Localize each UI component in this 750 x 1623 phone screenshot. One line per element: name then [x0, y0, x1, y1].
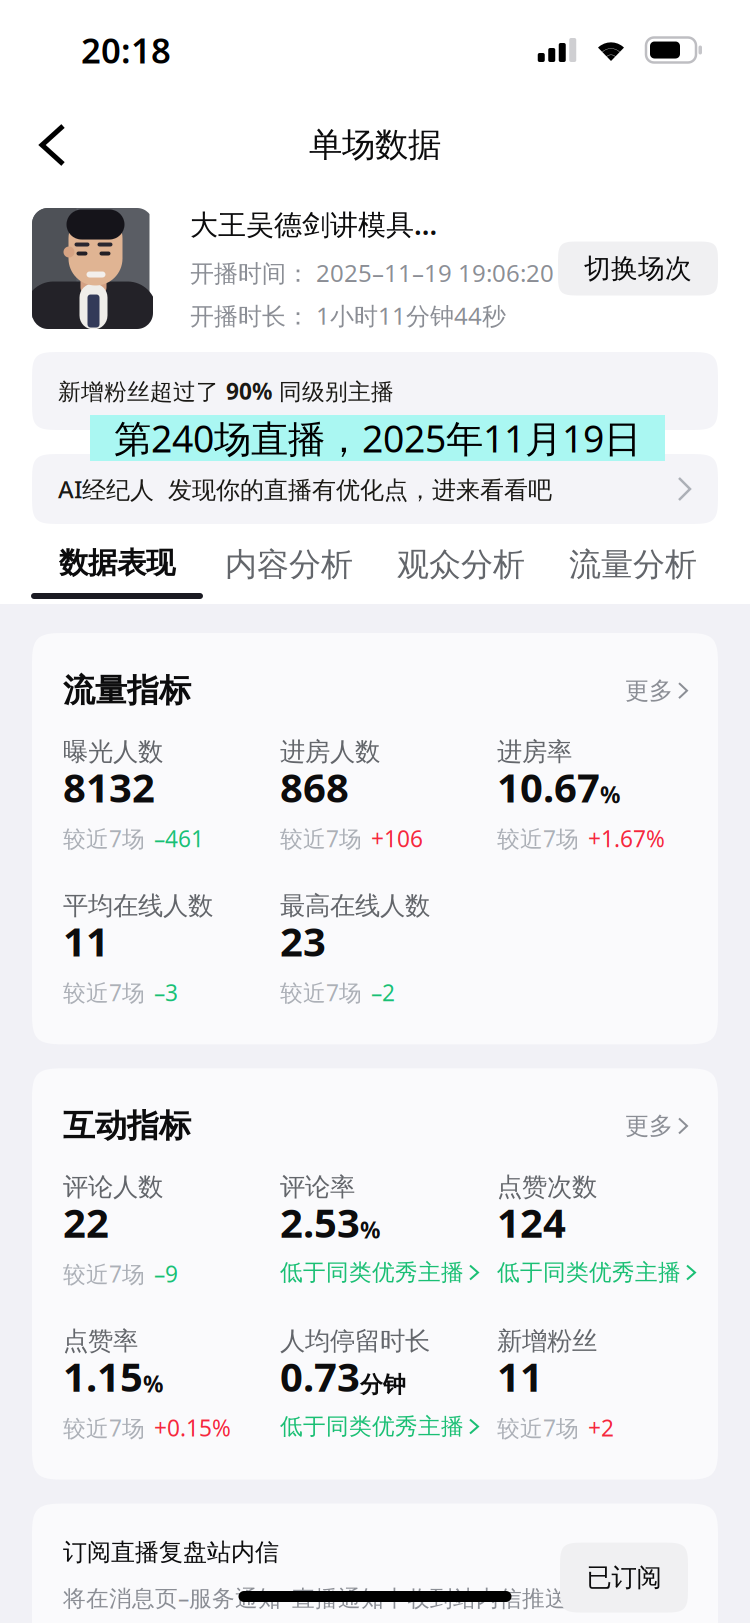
staticText: 更多	[625, 1111, 673, 1141]
staticText: 将在消息页–服务通知–直播通知中收到站内信推送	[63, 1583, 568, 1613]
staticText: 分钟	[360, 1371, 406, 1399]
staticText: 较近7场	[63, 1259, 145, 1289]
staticText: 已订阅	[586, 1562, 661, 1593]
staticText: 平均在线人数	[63, 890, 213, 921]
staticText: 较近7场	[280, 823, 362, 853]
staticText: 较近7场	[63, 823, 145, 853]
staticText: 低于同类优秀主播	[280, 1259, 464, 1286]
staticText: 较近7场	[63, 1413, 145, 1443]
staticText: 互动指标	[63, 1106, 191, 1146]
staticText: 20:18	[81, 27, 171, 73]
button[interactable]: 数据表现	[31, 524, 203, 604]
staticText: 124	[497, 1196, 566, 1249]
staticText: –9	[154, 1259, 178, 1289]
button[interactable]: 观众分析	[375, 524, 547, 604]
staticText: 23	[280, 914, 326, 967]
staticText: 人均停留时长	[280, 1326, 430, 1357]
button[interactable]: 流量分析	[547, 524, 719, 604]
staticText: –3	[154, 977, 178, 1007]
staticText: 单场数据	[309, 124, 441, 165]
staticText: 内容分析	[225, 545, 353, 584]
staticText: +0.15%	[154, 1413, 231, 1443]
staticText: 进房人数	[280, 736, 380, 767]
staticText: 最高在线人数	[280, 890, 430, 921]
staticText: 11	[63, 914, 109, 967]
staticText: 切换场次	[584, 252, 692, 285]
staticText: +1.67%	[588, 823, 665, 853]
staticText: +106	[371, 823, 423, 853]
staticText: 较近7场	[63, 977, 145, 1007]
staticText: 点赞率	[63, 1326, 138, 1357]
staticText: 流量指标	[63, 671, 191, 710]
button[interactable]: Back	[20, 112, 85, 178]
staticText: 22	[63, 1196, 109, 1249]
staticText: 订阅直播复盘站内信	[63, 1538, 279, 1567]
staticText: %	[600, 779, 620, 809]
staticText: 点赞次数	[497, 1172, 597, 1203]
staticText: +2	[588, 1413, 614, 1443]
staticText: 新增粉丝	[497, 1326, 597, 1357]
staticText: 868	[280, 760, 349, 813]
staticText: 较近7场	[497, 1413, 579, 1443]
staticText: 低于同类优秀主播	[497, 1259, 681, 1286]
staticText: 评论人数	[63, 1172, 163, 1203]
button[interactable]: 已订阅	[560, 1543, 688, 1613]
staticText: 更多	[625, 676, 673, 705]
staticText: %	[360, 1215, 380, 1245]
staticText: –2	[371, 977, 395, 1007]
button[interactable]: 更多	[625, 676, 687, 705]
staticText: 较近7场	[280, 977, 362, 1007]
staticText: 流量分析	[569, 545, 697, 584]
staticText: 10.67	[497, 760, 600, 813]
staticText: 较近7场	[497, 823, 579, 853]
staticText: 1.15	[63, 1350, 143, 1403]
staticText: 评论率	[280, 1172, 355, 1203]
staticText: %	[143, 1369, 163, 1399]
staticText: 第240场直播，2025年11月19日	[114, 413, 641, 463]
button[interactable]: 内容分析	[203, 524, 375, 604]
staticText: 曝光人数	[63, 736, 163, 767]
staticText: 数据表现	[59, 545, 175, 581]
staticText: –461	[154, 823, 204, 853]
staticText: 低于同类优秀主播	[280, 1413, 464, 1440]
staticText: 开播时长： 1小时11分钟44秒	[190, 300, 506, 331]
staticText: 0.73	[280, 1350, 360, 1403]
button[interactable]: 更多	[625, 1111, 687, 1141]
staticText: AI经纪人 发现你的直播有优化点，进来看看吧	[58, 473, 552, 505]
staticText: 观众分析	[397, 545, 525, 584]
staticText: 8132	[63, 760, 155, 813]
staticText: 大王吴德剑讲模具…	[190, 205, 437, 243]
staticText: 开播时间： 2025–11–19 19:06:20	[190, 257, 554, 289]
button[interactable]: 切换场次	[558, 241, 718, 295]
staticText: 进房率	[497, 736, 572, 767]
staticText: 2.53	[280, 1196, 360, 1249]
staticText: 11	[497, 1350, 543, 1403]
staticText: 新增粉丝超过了 90% 同级别主播	[58, 376, 394, 406]
button[interactable]: AI经纪人 发现你的直播有优化点，进来看看吧	[0, 454, 750, 524]
